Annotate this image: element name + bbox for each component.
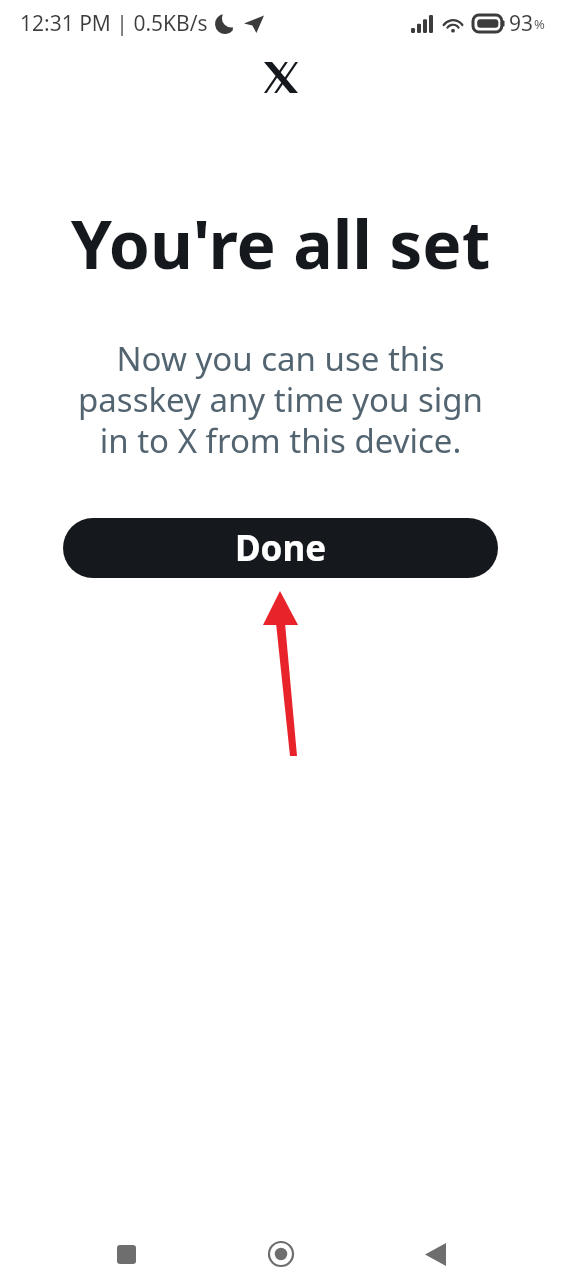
button[interactable]: Back bbox=[407, 1226, 463, 1282]
staticText: Now you can use this passkey any time yo… bbox=[76, 336, 485, 463]
staticText: 93 bbox=[509, 9, 534, 38]
button[interactable]: Recent apps bbox=[98, 1226, 154, 1282]
staticText: 12:31 PM | 0.5KB/s bbox=[20, 9, 208, 38]
staticText: You're all set bbox=[0, 198, 561, 288]
button[interactable]: Done bbox=[63, 518, 498, 578]
staticText: % bbox=[534, 15, 545, 33]
staticText: Done bbox=[235, 524, 327, 572]
button[interactable]: Home bbox=[253, 1226, 309, 1282]
